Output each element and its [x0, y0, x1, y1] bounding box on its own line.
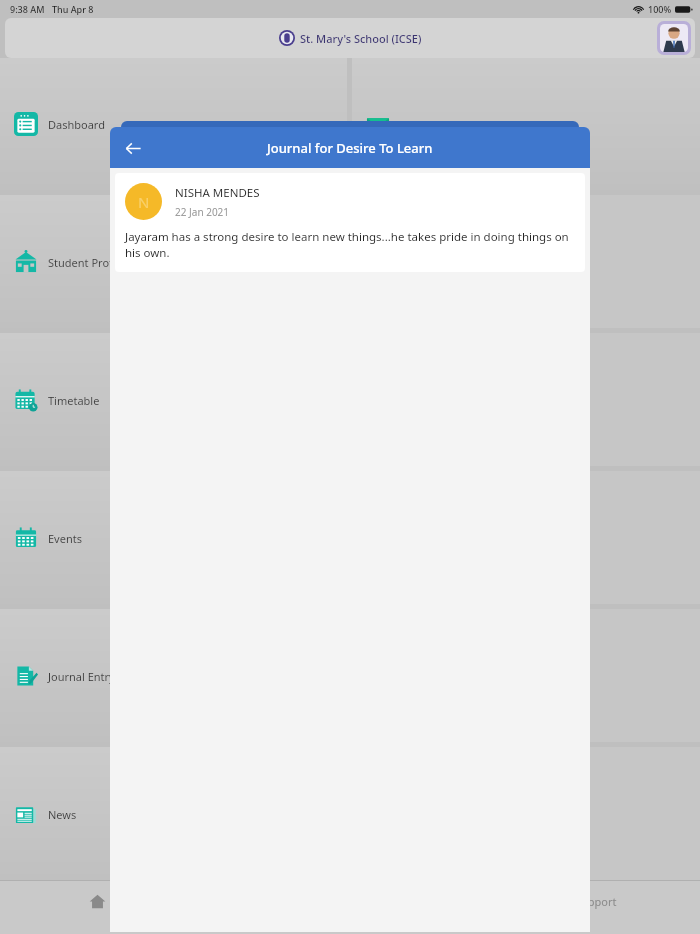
- staticText: 100%: [648, 3, 672, 15]
- staticText: Journal for Desire To Learn: [267, 139, 433, 157]
- staticText: 22 Jan 2021: [175, 205, 230, 219]
- button[interactable]: Inbox: [352, 58, 700, 190]
- staticText: News: [48, 807, 77, 822]
- button[interactable]: Student Profile: [0, 195, 347, 328]
- button[interactable]: Journal Entry: [0, 609, 347, 742]
- staticText: N: [138, 192, 150, 212]
- staticText: Inbox: [400, 117, 430, 132]
- button[interactable]: Timetable: [0, 333, 347, 466]
- staticText: Dashboard: [48, 117, 105, 132]
- button[interactable]: News: [0, 747, 347, 880]
- staticText: Events: [48, 531, 82, 546]
- staticText: St. Mary's School (ICSE): [300, 31, 422, 46]
- button[interactable]: Back: [118, 133, 148, 163]
- staticText: Support: [575, 894, 617, 909]
- staticText: Journal Entry: [48, 669, 115, 684]
- button[interactable]: Profile: [657, 21, 691, 55]
- button[interactable]: Events: [0, 471, 347, 604]
- staticText: 9:38 AM: [10, 3, 45, 15]
- staticText: Student Profile: [48, 255, 125, 270]
- staticText: Jayaram has a strong desire to learn new…: [125, 229, 573, 260]
- button[interactable]: Dashboard: [0, 58, 347, 190]
- button[interactable]: Support: [467, 881, 700, 921]
- staticText: Thu Apr 8: [52, 3, 94, 15]
- staticText: Timetable: [48, 393, 100, 408]
- staticText: NISHA MENDES: [175, 185, 260, 201]
- button[interactable]: Home: [0, 881, 234, 921]
- button[interactable]: N: [115, 173, 585, 272]
